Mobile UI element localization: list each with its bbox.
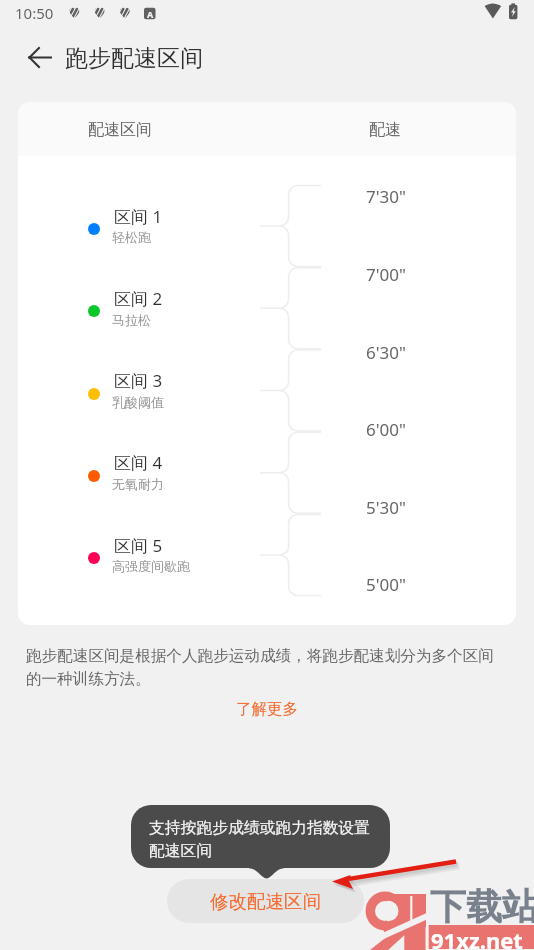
staticText: 5'30" xyxy=(366,496,406,519)
staticText: 配速 xyxy=(369,120,401,140)
staticText: 马拉松 xyxy=(112,312,151,328)
staticText: 跑步配速区间 xyxy=(65,44,203,73)
staticText: A xyxy=(147,8,154,20)
staticText: 区间 2 xyxy=(114,287,163,310)
staticText: 91xz.net xyxy=(431,925,523,950)
staticText: 7'00" xyxy=(366,263,406,286)
staticText: 6'00" xyxy=(366,418,406,441)
button[interactable]: Back xyxy=(16,34,64,82)
staticText: 高强度间歇跑 xyxy=(112,558,190,574)
staticText: 支持按跑步成绩或跑力指数设置配速区间 xyxy=(149,818,374,860)
staticText: 10:50 xyxy=(15,3,54,23)
staticText: 了解更多 xyxy=(236,699,298,719)
staticText: 跑步配速区间是根据个人跑步运动成绩，将跑步配速划分为多个区间的一种训练方法。 xyxy=(26,646,504,689)
staticText: 6'30" xyxy=(366,341,406,364)
button[interactable]: 修改配速区间 xyxy=(167,879,364,923)
staticText: 配速区间 xyxy=(88,120,152,140)
button[interactable]: 了解更多 xyxy=(231,697,303,721)
staticText: 区间 5 xyxy=(114,534,163,557)
staticText: 下载站 xyxy=(430,884,534,929)
staticText: 修改配速区间 xyxy=(210,890,321,913)
staticText: 5'00" xyxy=(366,573,406,596)
staticText: 区间 1 xyxy=(114,205,163,228)
staticText: 区间 3 xyxy=(114,369,163,392)
staticText: 轻松跑 xyxy=(112,229,151,245)
staticText: 乳酸阈值 xyxy=(112,394,164,410)
staticText: 7'30" xyxy=(366,185,406,208)
staticText: 无氧耐力 xyxy=(112,476,164,492)
staticText: 区间 4 xyxy=(114,451,163,474)
